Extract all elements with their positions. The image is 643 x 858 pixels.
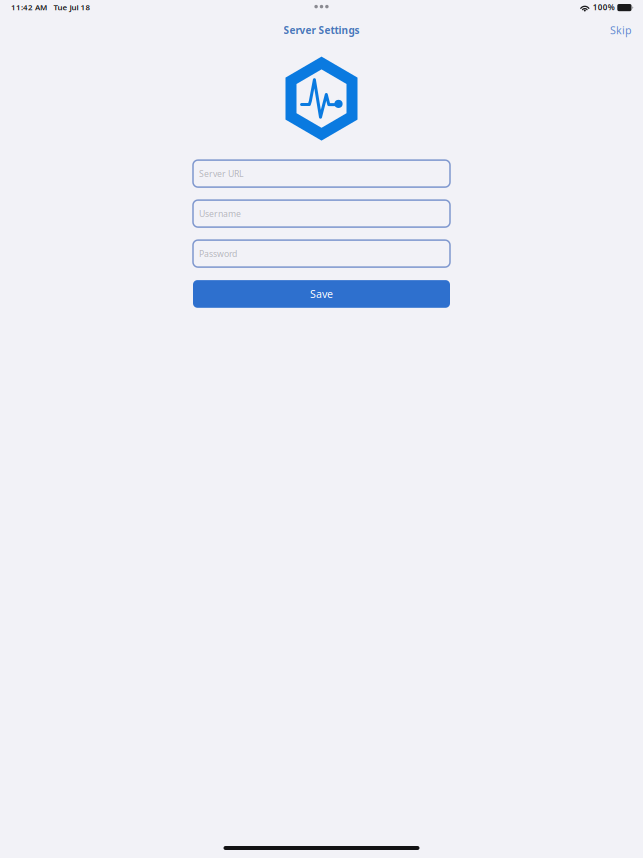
- button[interactable]: Save: [193, 280, 450, 308]
- staticText: Username: [199, 208, 241, 219]
- button[interactable]: Server URL: [193, 160, 450, 187]
- staticText: Skip: [610, 23, 632, 37]
- staticText: Password: [199, 248, 237, 259]
- staticText: Save: [310, 287, 333, 301]
- staticText: 11:42 AM: [11, 2, 47, 12]
- button[interactable]: Skip: [596, 16, 643, 44]
- staticText: Server URL: [199, 168, 244, 179]
- staticText: Tue Jul 18: [53, 2, 90, 12]
- staticText: 100%: [593, 2, 615, 13]
- button[interactable]: Username: [193, 200, 450, 227]
- button[interactable]: Password: [193, 240, 450, 267]
- staticText: Server Settings: [283, 23, 359, 37]
